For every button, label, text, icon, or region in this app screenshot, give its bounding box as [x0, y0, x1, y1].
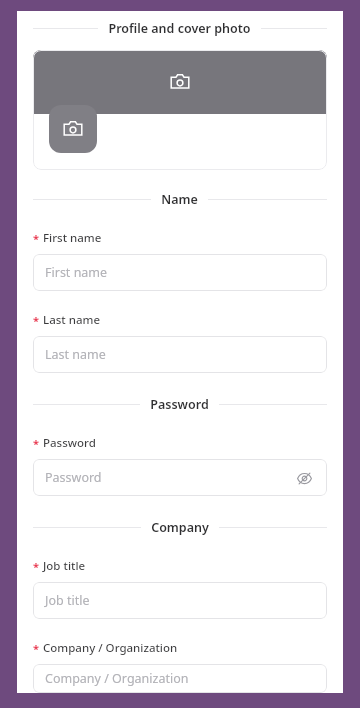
button[interactable]: First name	[33, 254, 327, 291]
button[interactable]: Show password	[293, 467, 315, 489]
staticText: First name	[43, 230, 102, 246]
staticText: Company / Organization	[45, 670, 315, 687]
staticText: Job title	[45, 592, 315, 609]
staticText: Job title	[43, 558, 86, 574]
staticText: *	[33, 231, 39, 246]
staticText: Last name	[45, 346, 315, 363]
staticText: Company / Organization	[43, 640, 178, 656]
button[interactable]: Add profile photo	[49, 105, 97, 153]
staticText: *	[33, 641, 39, 656]
button[interactable]: Last name	[33, 336, 327, 373]
staticText: Password	[45, 469, 293, 486]
staticText: *	[33, 313, 39, 328]
button[interactable]: Add cover photo	[33, 50, 327, 114]
staticText: Profile and cover photo	[108, 20, 251, 37]
button[interactable]: Job title	[33, 582, 327, 619]
staticText: Last name	[43, 312, 100, 328]
staticText: Company	[151, 519, 209, 536]
staticText: Password	[43, 435, 96, 451]
staticText: *	[33, 436, 39, 451]
button[interactable]: Company / Organization	[33, 664, 327, 693]
staticText: *	[33, 559, 39, 574]
button[interactable]: Password	[33, 459, 327, 496]
staticText: Name	[161, 191, 198, 208]
staticText: Password	[150, 396, 209, 413]
staticText: First name	[45, 264, 315, 281]
